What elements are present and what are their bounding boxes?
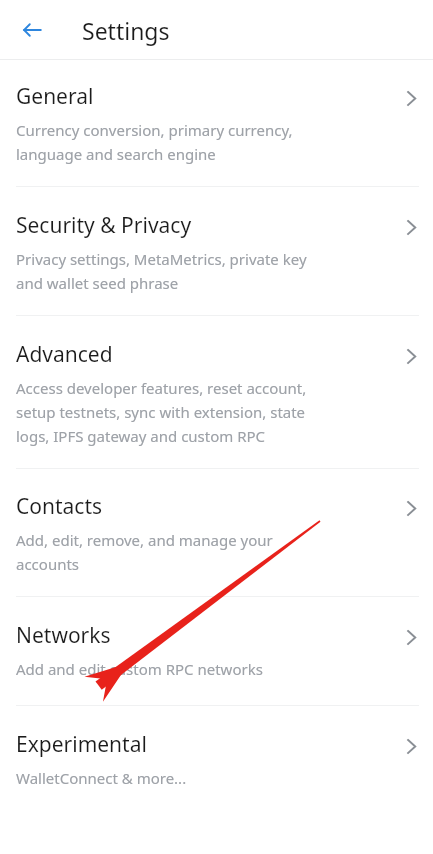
button[interactable]: Networks: [0, 597, 433, 705]
staticText: Add and edit custom RPC networks: [16, 659, 263, 679]
staticText: Experimental: [16, 730, 147, 759]
staticText: Advanced: [16, 340, 113, 369]
staticText: Access developer features, reset account…: [16, 378, 307, 446]
button[interactable]: Experimental: [0, 706, 433, 812]
staticText: Security & Privacy: [16, 211, 192, 240]
staticText: Add, edit, remove, and manage your accou…: [16, 530, 273, 574]
staticText: Privacy settings, MetaMetrics, private k…: [16, 249, 307, 293]
button[interactable]: Contacts: [0, 469, 433, 596]
staticText: Settings: [82, 15, 170, 46]
button[interactable]: Back: [14, 12, 50, 48]
staticText: Contacts: [16, 492, 103, 521]
staticText: Networks: [16, 621, 111, 650]
button[interactable]: Security & Privacy: [0, 187, 433, 315]
staticText: General: [16, 82, 94, 111]
button[interactable]: General: [0, 60, 433, 186]
staticText: Currency conversion, primary currency, l…: [16, 120, 293, 164]
button[interactable]: Advanced: [0, 316, 433, 468]
staticText: WalletConnect & more...: [16, 768, 187, 788]
